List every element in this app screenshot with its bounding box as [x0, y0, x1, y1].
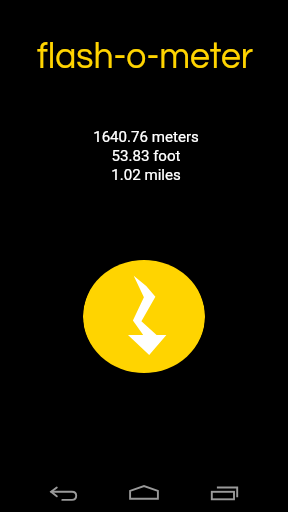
staticText: 1640.76 meters 53.83 foot 1.02 miles	[2, 128, 288, 184]
button[interactable]: Flash	[83, 260, 205, 373]
button[interactable]: Home	[112, 464, 168, 512]
button[interactable]: Back	[30, 464, 86, 512]
button[interactable]: Recent apps	[192, 464, 248, 512]
staticText: flash-o-meter	[37, 37, 254, 76]
